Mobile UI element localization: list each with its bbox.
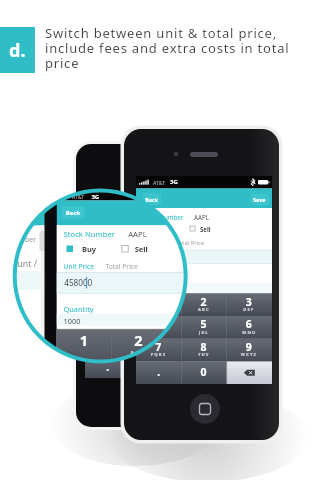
staticText: Switch between unit & total price, inclu… [45,24,290,72]
staticText: d. [9,38,26,63]
button[interactable]: d. [0,27,35,73]
